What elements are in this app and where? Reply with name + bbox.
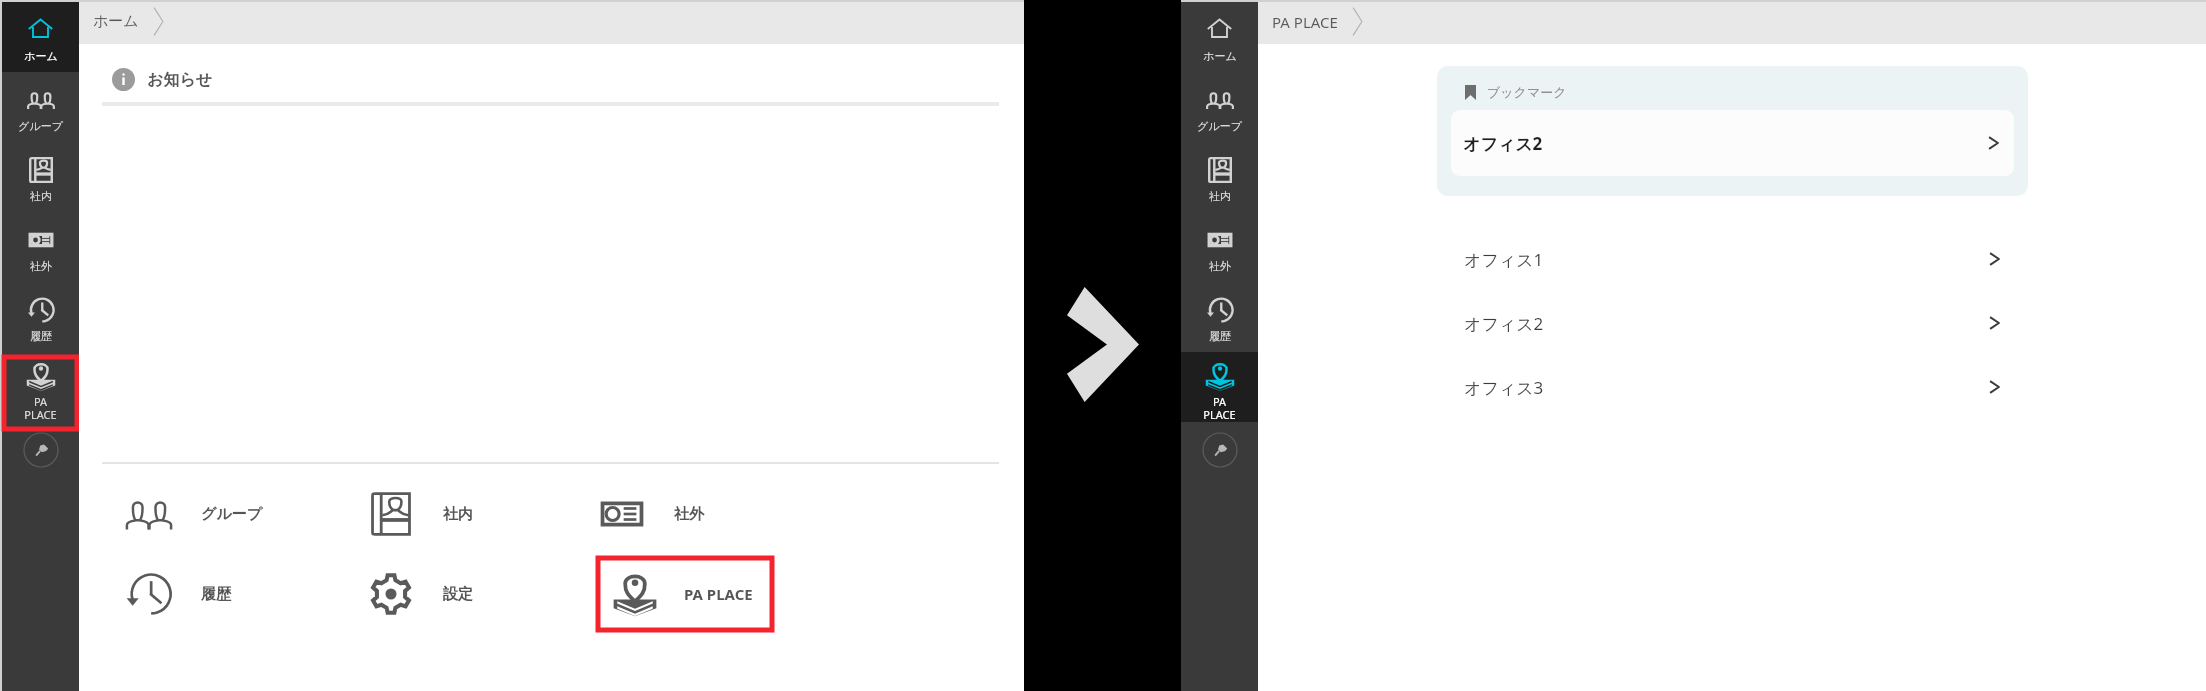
staticText: 社外 (674, 505, 704, 524)
button[interactable]: 履歴 (2, 282, 79, 352)
staticText: ホーム (1203, 49, 1237, 63)
staticText: オフィス2 (1464, 312, 1544, 335)
staticText: 履歴 (30, 329, 52, 343)
button[interactable]: グループ (2, 72, 79, 142)
button[interactable]: 社内 (1181, 142, 1258, 212)
staticText: 履歴 (201, 585, 231, 604)
staticText: グループ (18, 119, 63, 133)
button[interactable]: 社外 (2, 212, 79, 282)
staticText: 社外 (1209, 259, 1231, 273)
staticText: 社内 (1209, 189, 1231, 203)
staticText: オフィス3 (1464, 376, 1544, 399)
staticText: 社内 (443, 505, 473, 524)
staticText: 設定 (443, 585, 473, 604)
button[interactable]: ホーム (2, 2, 79, 72)
staticText: PA PLACE (1272, 12, 1338, 32)
staticText: 社内 (30, 189, 52, 203)
button[interactable]: グループ (125, 478, 305, 550)
staticText: グループ (201, 505, 263, 524)
staticText: ホーム (24, 49, 58, 63)
button[interactable]: PA PLACE (2, 352, 79, 422)
staticText: お知らせ (147, 70, 213, 90)
staticText: ホーム (93, 12, 139, 31)
button[interactable]: PA PLACE (598, 558, 772, 630)
button[interactable]: 履歴 (125, 558, 305, 630)
button[interactable]: 社内 (367, 478, 547, 550)
button[interactable]: オフィス2 (1437, 291, 2028, 355)
staticText: PA PLACE (1203, 394, 1236, 422)
button[interactable]: 社外 (1181, 212, 1258, 282)
button[interactable]: ホーム (1181, 2, 1258, 72)
button[interactable]: グループ (1181, 72, 1258, 142)
staticText: PA PLACE (24, 394, 57, 422)
button[interactable]: Pin shortcuts (1202, 432, 1238, 468)
button[interactable]: PA PLACE (1181, 352, 1258, 422)
button[interactable]: 社内 (2, 142, 79, 212)
button[interactable]: Pin shortcuts (23, 432, 59, 468)
button[interactable]: オフィス3 (1437, 355, 2028, 419)
button[interactable]: 履歴 (1181, 282, 1258, 352)
staticText: PA PLACE (684, 584, 753, 604)
button[interactable]: オフィス2 (1451, 110, 2014, 176)
button[interactable]: 設定 (367, 558, 547, 630)
staticText: オフィス2 (1463, 132, 1543, 155)
button[interactable]: 社外 (598, 478, 778, 550)
staticText: 社外 (30, 259, 52, 273)
staticText: ブックマーク (1487, 84, 1567, 100)
staticText: オフィス1 (1464, 248, 1544, 271)
staticText: 履歴 (1209, 329, 1231, 343)
button[interactable]: オフィス1 (1437, 227, 2028, 291)
staticText: グループ (1197, 119, 1242, 133)
